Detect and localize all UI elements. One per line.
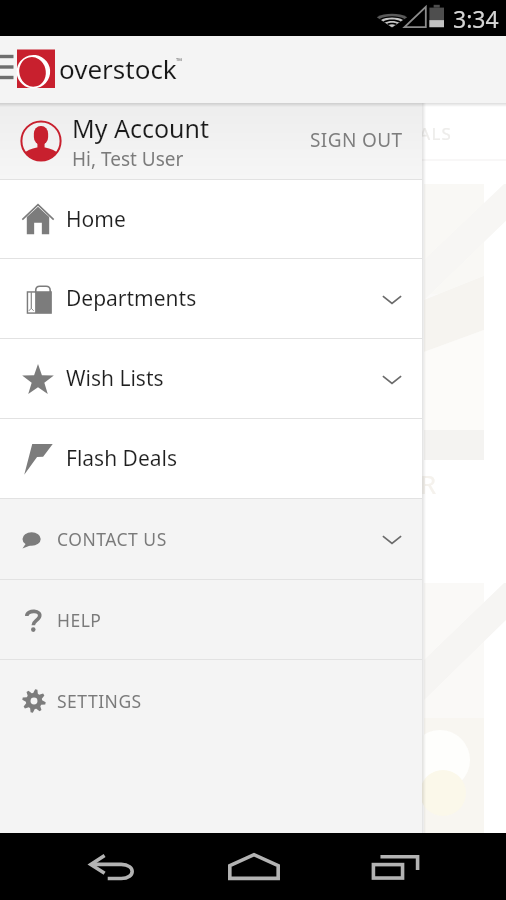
- staticText: Hi, Test User: [72, 146, 184, 172]
- button[interactable]: Wish Lists: [0, 339, 422, 418]
- staticText: TODAY'S DEALS: [314, 122, 453, 145]
- button[interactable]: Recent apps: [353, 833, 438, 900]
- button[interactable]: Home: [0, 180, 422, 258]
- button[interactable]: Back: [72, 833, 157, 900]
- button[interactable]: SETTINGS: [0, 660, 422, 741]
- button[interactable]: SIGN OUT: [304, 117, 409, 163]
- staticText: ™: [176, 55, 183, 66]
- staticText: overstock: [59, 51, 177, 86]
- button[interactable]: Home: [211, 833, 296, 900]
- button[interactable]: Departments: [0, 259, 422, 338]
- button[interactable]: CONTACT US: [0, 499, 422, 579]
- button[interactable]: Open navigation menu: [0, 36, 506, 103]
- staticText: SIGN OUT: [310, 127, 403, 153]
- staticText: Departments: [66, 284, 197, 313]
- staticText: CONTACT US: [57, 527, 167, 551]
- staticText: Home: [66, 205, 126, 234]
- staticText: HELP: [57, 608, 102, 632]
- staticText: My Account: [72, 111, 209, 145]
- button[interactable]: My Account: [0, 103, 422, 179]
- button[interactable]: HELP: [0, 580, 422, 659]
- staticText: SETTINGS: [57, 689, 142, 713]
- staticText: CLEARANCE CENTER: [171, 466, 438, 501]
- button[interactable]: Flash Deals: [0, 419, 422, 498]
- staticText: 3:34: [453, 3, 499, 34]
- staticText: Wish Lists: [66, 364, 164, 393]
- staticText: Flash Deals: [66, 444, 178, 473]
